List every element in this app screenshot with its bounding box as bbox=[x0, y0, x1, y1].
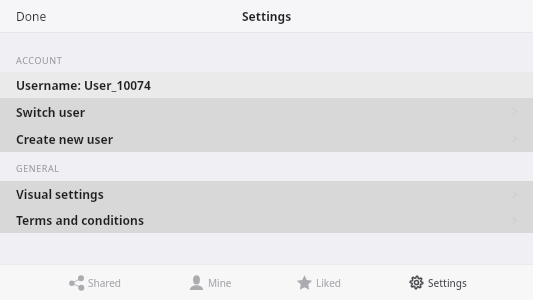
other: Liked bbox=[297, 275, 312, 290]
button[interactable]: Settings bbox=[400, 265, 533, 300]
button[interactable]: Mine bbox=[134, 265, 267, 300]
staticText: Username: User_10074 bbox=[16, 77, 151, 93]
button[interactable]: Shared bbox=[0, 265, 134, 300]
staticText: Switch user bbox=[16, 104, 86, 120]
button[interactable]: Terms and conditions bbox=[0, 207, 533, 233]
other: Shared bbox=[69, 275, 84, 290]
button[interactable]: Switch user bbox=[0, 98, 533, 125]
button[interactable]: Visual settings bbox=[0, 181, 533, 207]
staticText: Settings bbox=[428, 276, 467, 290]
button[interactable]: Create new user bbox=[0, 125, 533, 152]
other: Settings bbox=[409, 275, 424, 290]
button[interactable]: Username: User_10074 bbox=[0, 72, 533, 98]
staticText: Terms and conditions bbox=[16, 212, 144, 228]
button[interactable]: Done bbox=[0, 2, 63, 30]
button[interactable]: Liked bbox=[267, 265, 400, 300]
staticText: Settings bbox=[242, 8, 292, 24]
other: Mine bbox=[189, 275, 204, 290]
staticText: Visual settings bbox=[16, 186, 104, 202]
staticText: ACCOUNT bbox=[16, 54, 63, 66]
staticText: Create new user bbox=[16, 131, 114, 147]
staticText: Shared bbox=[88, 276, 121, 290]
staticText: Done bbox=[16, 8, 47, 24]
staticText: Mine bbox=[208, 276, 232, 290]
staticText: Liked bbox=[316, 276, 341, 290]
staticText: GENERAL bbox=[16, 162, 60, 174]
